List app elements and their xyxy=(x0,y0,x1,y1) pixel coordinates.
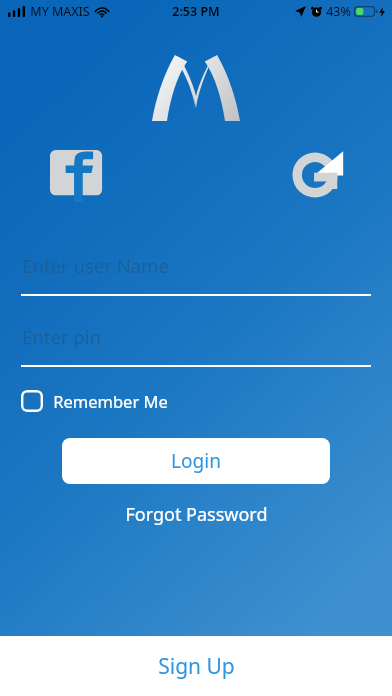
staticText: Login xyxy=(171,448,221,474)
button[interactable]: Remember Me xyxy=(21,386,168,416)
staticText: 2:53 PM xyxy=(172,3,220,20)
button[interactable]: Sign Up xyxy=(0,636,392,696)
staticText: MY MAXIS xyxy=(30,3,90,20)
button[interactable]: Login xyxy=(62,438,330,484)
staticText: Forgot Password xyxy=(125,502,268,527)
staticText: Remember Me xyxy=(53,390,168,412)
button[interactable]: Sign in with Google xyxy=(290,151,340,199)
button[interactable]: Enter pin xyxy=(0,317,392,355)
button[interactable]: Enter user Name xyxy=(0,246,392,284)
button[interactable]: Sign in with Facebook xyxy=(50,150,106,202)
staticText: Sign Up xyxy=(158,652,235,681)
staticText: 43% xyxy=(326,3,351,20)
staticText: Enter user Name xyxy=(22,253,169,278)
staticText: Enter pin xyxy=(22,324,101,349)
button[interactable]: Forgot Password xyxy=(111,498,282,531)
